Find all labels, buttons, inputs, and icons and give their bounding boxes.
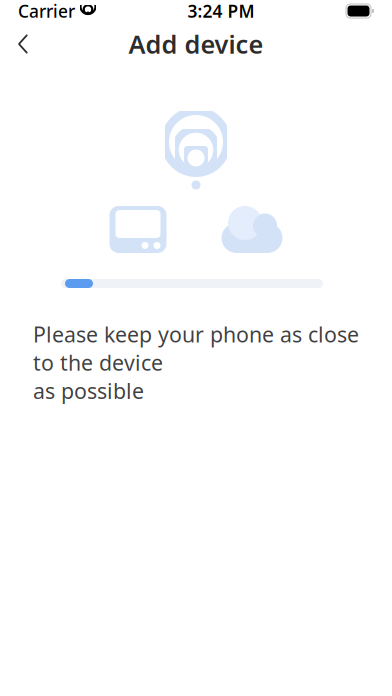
button[interactable]: Back (0, 22, 46, 66)
staticText: Please keep your phone as close to the d… (33, 320, 359, 405)
staticText: Add device (128, 27, 263, 61)
staticText: 3:24 PM (187, 0, 254, 22)
staticText: Carrier (18, 0, 75, 22)
